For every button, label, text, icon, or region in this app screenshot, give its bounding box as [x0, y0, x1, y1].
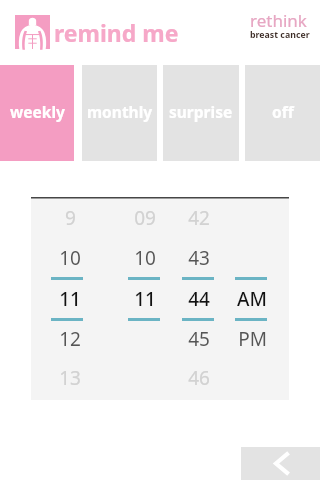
staticText: 9	[65, 205, 76, 231]
button[interactable]: 11	[115, 285, 175, 313]
staticText: off	[272, 101, 294, 122]
staticText: 12	[59, 326, 81, 352]
staticText: weekly	[10, 101, 65, 122]
button[interactable]: 09	[115, 204, 175, 232]
button[interactable]: 10	[40, 244, 100, 272]
button[interactable]: 13	[40, 364, 100, 392]
button[interactable]: rethink	[250, 9, 310, 44]
staticText: 44	[188, 286, 210, 312]
button[interactable]: surprise	[163, 65, 239, 161]
staticText: 46	[188, 365, 210, 391]
button[interactable]: monthly	[82, 65, 157, 161]
button[interactable]: AM	[222, 285, 282, 313]
button[interactable]: 12	[40, 325, 100, 353]
button[interactable]: App logo	[15, 15, 50, 49]
staticText: AM	[237, 286, 267, 312]
button[interactable]: 11	[40, 285, 100, 313]
button[interactable]: weekly	[0, 65, 74, 161]
button[interactable]: 44	[169, 285, 229, 313]
staticText: 10	[134, 245, 156, 271]
button[interactable]: PM	[222, 325, 282, 353]
staticText: 10	[59, 245, 81, 271]
staticText: monthly	[87, 101, 153, 122]
button[interactable]: Back	[241, 447, 320, 480]
staticText: 13	[59, 365, 81, 391]
staticText: 43	[188, 245, 210, 271]
staticText: 42	[188, 205, 210, 231]
staticText: PM	[238, 326, 267, 352]
button[interactable]: 10	[115, 244, 175, 272]
staticText: 09	[134, 205, 156, 231]
staticText: rethink	[250, 9, 307, 32]
staticText: 11	[59, 286, 81, 312]
staticText: remind me	[54, 17, 179, 48]
button[interactable]: 9	[40, 204, 100, 232]
staticText: breast cancer	[250, 29, 310, 41]
button[interactable]: 42	[169, 204, 229, 232]
button[interactable]: 46	[169, 364, 229, 392]
staticText: 45	[188, 326, 210, 352]
staticText: surprise	[169, 101, 233, 122]
button[interactable]: off	[245, 65, 320, 161]
staticText: 11	[134, 286, 156, 312]
button[interactable]: 43	[169, 244, 229, 272]
button[interactable]: 45	[169, 325, 229, 353]
